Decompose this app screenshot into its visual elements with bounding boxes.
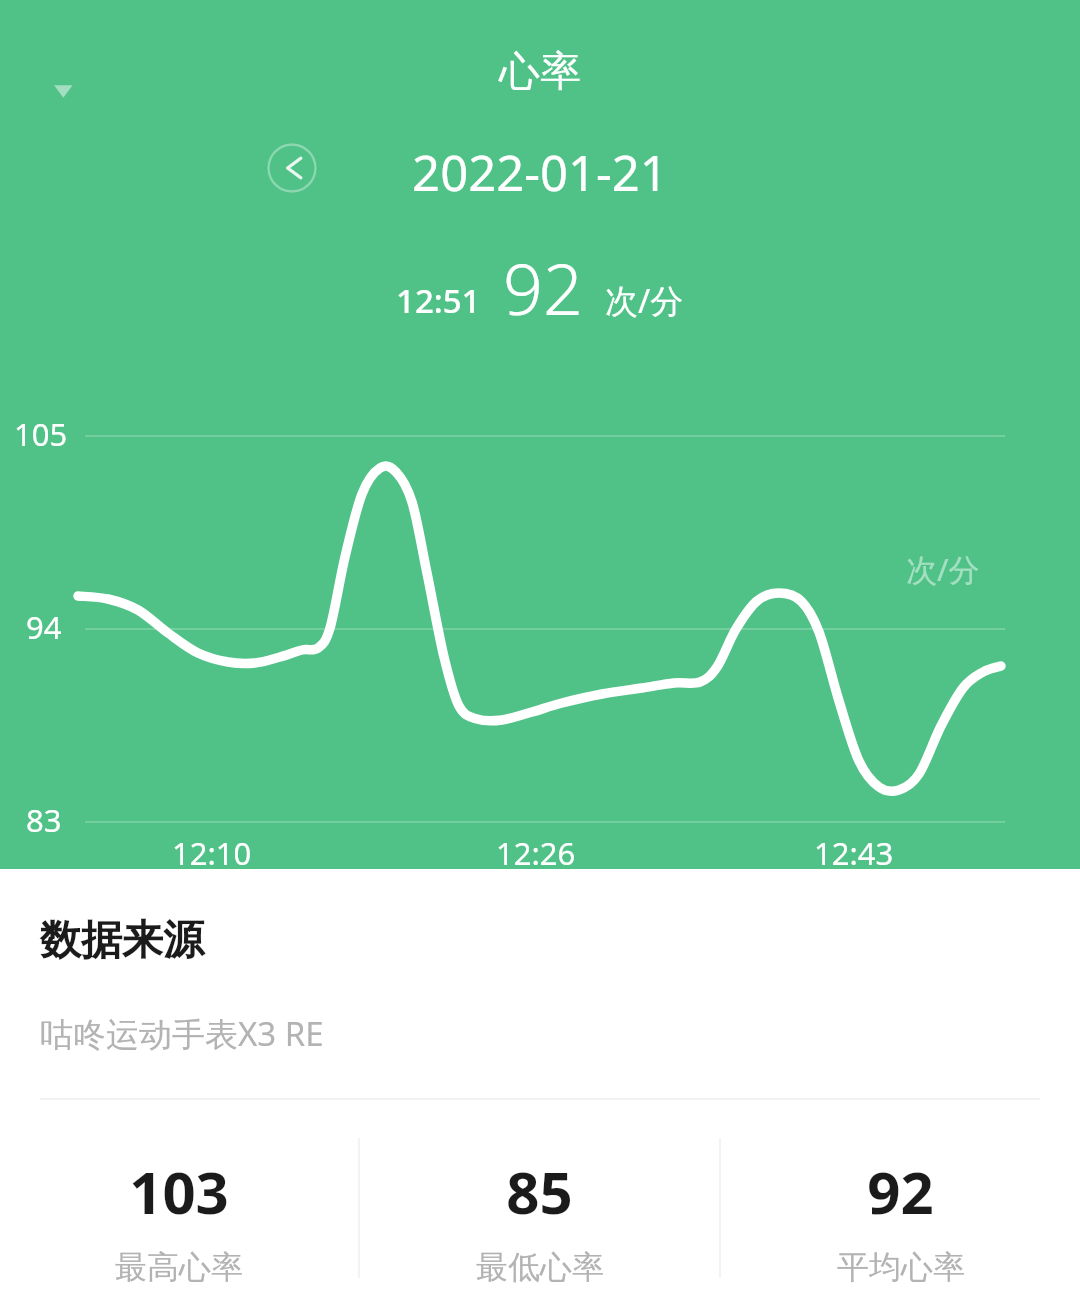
staticText: 92 [503,240,583,335]
button[interactable]: Previous day [267,143,317,193]
button[interactable]: 103 [0,1138,358,1299]
staticText: 最低心率 [476,1247,604,1287]
staticText: 12:10 [172,832,252,874]
staticText: 92 [867,1152,934,1231]
staticText: 85 [506,1152,573,1231]
staticText: 最高心率 [115,1247,243,1287]
staticText: 次/分 [906,548,980,590]
staticText: 咕咚运动手表X3 RE [40,1011,324,1056]
staticText: 105 [14,413,68,455]
staticText: 12:51 [396,278,481,323]
staticText: 心率 [499,46,581,98]
staticText: 数据来源 [40,915,204,967]
button[interactable]: Select range [44,54,86,106]
staticText: 次/分 [605,278,684,323]
staticText: 83 [26,799,62,841]
staticText: 94 [26,606,62,648]
staticText: 平均心率 [837,1247,965,1287]
staticText: 12:26 [496,832,576,874]
button[interactable]: 92 [721,1138,1080,1299]
button[interactable]: 85 [360,1138,719,1299]
staticText: 2022-01-21 [412,139,668,206]
staticText: 103 [129,1152,229,1231]
staticText: 12:43 [814,832,894,874]
